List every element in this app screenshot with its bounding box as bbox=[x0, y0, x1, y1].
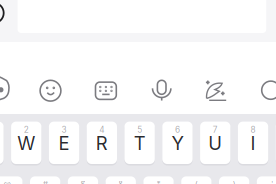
staticText: $ bbox=[80, 180, 85, 184]
button[interactable]: * bbox=[143, 176, 174, 184]
button[interactable]: Add attachment bbox=[0, 3, 4, 23]
staticText: ' bbox=[271, 180, 273, 184]
button[interactable]: 5 bbox=[124, 122, 155, 164]
staticText: @ bbox=[3, 180, 11, 184]
staticText: W bbox=[17, 132, 35, 155]
button[interactable]: 4 bbox=[87, 122, 117, 164]
button[interactable]: ( bbox=[181, 176, 211, 184]
button[interactable]: ) bbox=[219, 176, 249, 184]
button[interactable]: ' bbox=[257, 176, 276, 184]
staticText: 5 bbox=[137, 125, 142, 135]
staticText: 3 bbox=[61, 125, 66, 135]
staticText: 8 bbox=[250, 125, 255, 135]
button[interactable]: 7 bbox=[200, 122, 230, 164]
staticText: 7 bbox=[213, 125, 218, 135]
staticText: Y bbox=[171, 132, 183, 155]
button[interactable]: @ bbox=[0, 176, 22, 184]
staticText: R bbox=[96, 132, 108, 155]
button[interactable]: 6 bbox=[162, 122, 193, 164]
button[interactable]: 3 bbox=[49, 122, 79, 164]
staticText: 2 bbox=[24, 125, 29, 135]
staticText: ) bbox=[233, 180, 236, 184]
staticText: ( bbox=[195, 180, 198, 184]
staticText: 4 bbox=[99, 125, 104, 135]
button[interactable]: & bbox=[106, 176, 136, 184]
staticText: U bbox=[208, 132, 222, 155]
staticText: 6 bbox=[175, 125, 180, 135]
staticText: # bbox=[43, 180, 48, 184]
button[interactable]: 1 bbox=[0, 122, 4, 164]
button[interactable]: 2 bbox=[11, 122, 41, 164]
staticText: T bbox=[134, 132, 146, 155]
button[interactable]: $ bbox=[68, 176, 98, 184]
staticText: & bbox=[118, 180, 123, 184]
staticText: E bbox=[58, 132, 69, 155]
button[interactable]: # bbox=[30, 176, 60, 184]
staticText: * bbox=[156, 180, 160, 184]
staticText: I bbox=[250, 132, 255, 155]
button[interactable]: 8 bbox=[238, 122, 268, 164]
